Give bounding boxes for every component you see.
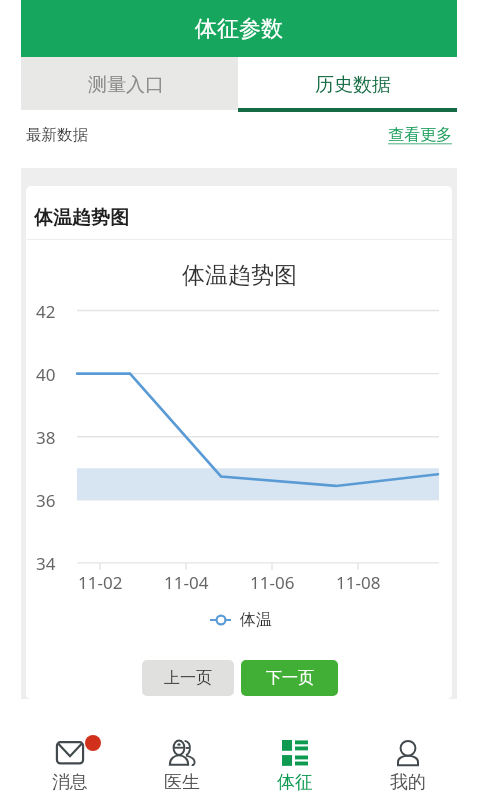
button[interactable]: Vitals	[238, 718, 351, 800]
staticText: 11-06	[250, 571, 295, 593]
staticText: 36	[36, 489, 56, 511]
staticText: 11-08	[336, 571, 381, 593]
staticText: 11-04	[164, 571, 209, 593]
staticText: 消息	[52, 771, 88, 794]
staticText: 体征	[277, 771, 313, 794]
staticText: 我的	[390, 771, 426, 794]
staticText: 11-02	[78, 571, 123, 593]
staticText: 下一页	[266, 668, 314, 688]
staticText: 体温趋势图	[182, 261, 297, 290]
button[interactable]: Messages	[14, 718, 126, 800]
button[interactable]: 下一页	[241, 660, 338, 696]
staticText: 38	[36, 426, 56, 448]
staticText: 测量入口	[88, 73, 164, 97]
staticText: 体温	[240, 610, 272, 630]
staticText: 上一页	[164, 668, 212, 688]
staticText: 体征参数	[195, 15, 283, 43]
button[interactable]: 查看更多	[388, 125, 452, 145]
button[interactable]: 测量入口	[21, 57, 238, 110]
button[interactable]: 历史数据	[238, 57, 457, 110]
staticText: 体温趋势图	[34, 206, 129, 230]
staticText: 历史数据	[315, 73, 391, 97]
staticText: 42	[36, 300, 56, 322]
staticText: 查看更多	[388, 125, 452, 145]
staticText: 最新数据	[26, 125, 88, 145]
staticText: 40	[36, 363, 56, 385]
staticText: 医生	[164, 771, 200, 794]
button[interactable]: 上一页	[142, 660, 234, 696]
button[interactable]: Doctor	[126, 718, 238, 800]
staticText: 34	[36, 552, 56, 574]
button[interactable]: Profile	[351, 718, 464, 800]
